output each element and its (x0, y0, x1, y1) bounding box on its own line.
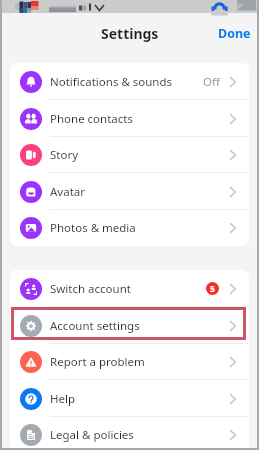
button[interactable]: Legal & policies (10, 416, 249, 450)
button[interactable]: Phone contacts (10, 100, 249, 137)
staticText: 5 (210, 283, 215, 295)
staticText: Off (203, 74, 220, 90)
button[interactable]: Done (218, 25, 251, 42)
staticText: Report a problem (50, 354, 145, 370)
button[interactable]: Photos & media (10, 209, 249, 246)
staticText: Legal & policies (50, 427, 134, 443)
staticText: Settings (101, 24, 159, 43)
staticText: Done (218, 25, 251, 42)
staticText: Switch account (50, 281, 131, 297)
button[interactable]: Report a problem (10, 343, 249, 380)
button[interactable]: Notifications & sounds (10, 63, 249, 100)
staticText: Photos & media (50, 220, 136, 236)
button[interactable]: Avatar (10, 173, 249, 210)
staticText: Avatar (50, 184, 85, 200)
staticText: Phone contacts (50, 111, 133, 127)
staticText: Account settings (50, 318, 140, 334)
button[interactable]: Switch account (10, 270, 249, 307)
staticText: Notifications & sounds (50, 74, 173, 90)
staticText: Story (50, 147, 79, 163)
staticText: Help (50, 391, 76, 407)
button[interactable]: Help (10, 380, 249, 417)
button[interactable]: Account settings (10, 307, 249, 344)
button[interactable]: Story (10, 136, 249, 173)
